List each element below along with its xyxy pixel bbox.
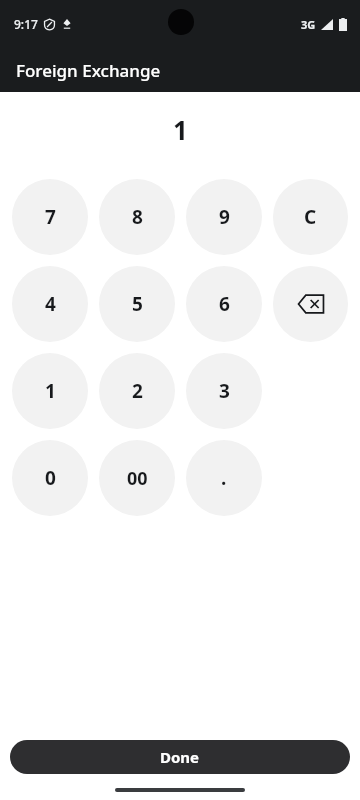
staticText: Done xyxy=(160,747,200,767)
staticText: 8 xyxy=(132,204,143,230)
staticText: 1 xyxy=(173,112,188,147)
staticText: 7 xyxy=(45,204,56,230)
staticText: 9:17 xyxy=(14,16,38,32)
staticText: 5 xyxy=(132,291,143,317)
button[interactable]: Backspace xyxy=(273,266,348,342)
button[interactable]: Done xyxy=(10,740,350,774)
staticText: 9 xyxy=(219,204,230,230)
button[interactable]: . xyxy=(186,440,262,516)
button[interactable]: 4 xyxy=(12,266,88,342)
button[interactable]: 8 xyxy=(99,179,175,255)
button[interactable]: 7 xyxy=(12,179,88,255)
button[interactable]: 3 xyxy=(186,353,262,429)
button[interactable]: 0 xyxy=(12,440,88,516)
staticText: 0 xyxy=(45,465,56,491)
staticText: C xyxy=(304,204,317,230)
staticText: Foreign Exchange xyxy=(16,59,161,82)
button[interactable]: 9 xyxy=(186,179,262,255)
staticText: 2 xyxy=(132,378,143,404)
staticText: 00 xyxy=(127,466,148,491)
staticText: 1 xyxy=(45,378,56,404)
button[interactable]: 5 xyxy=(99,266,175,342)
button[interactable]: C xyxy=(273,179,348,255)
button[interactable]: 2 xyxy=(99,353,175,429)
staticText: 6 xyxy=(219,291,230,317)
staticText: 3 xyxy=(219,378,230,404)
staticText: . xyxy=(221,465,227,491)
staticText: 4 xyxy=(45,291,56,317)
staticText: 3G xyxy=(301,17,316,32)
button[interactable]: 6 xyxy=(186,266,262,342)
button[interactable]: 1 xyxy=(12,353,88,429)
button[interactable]: 00 xyxy=(99,440,175,516)
